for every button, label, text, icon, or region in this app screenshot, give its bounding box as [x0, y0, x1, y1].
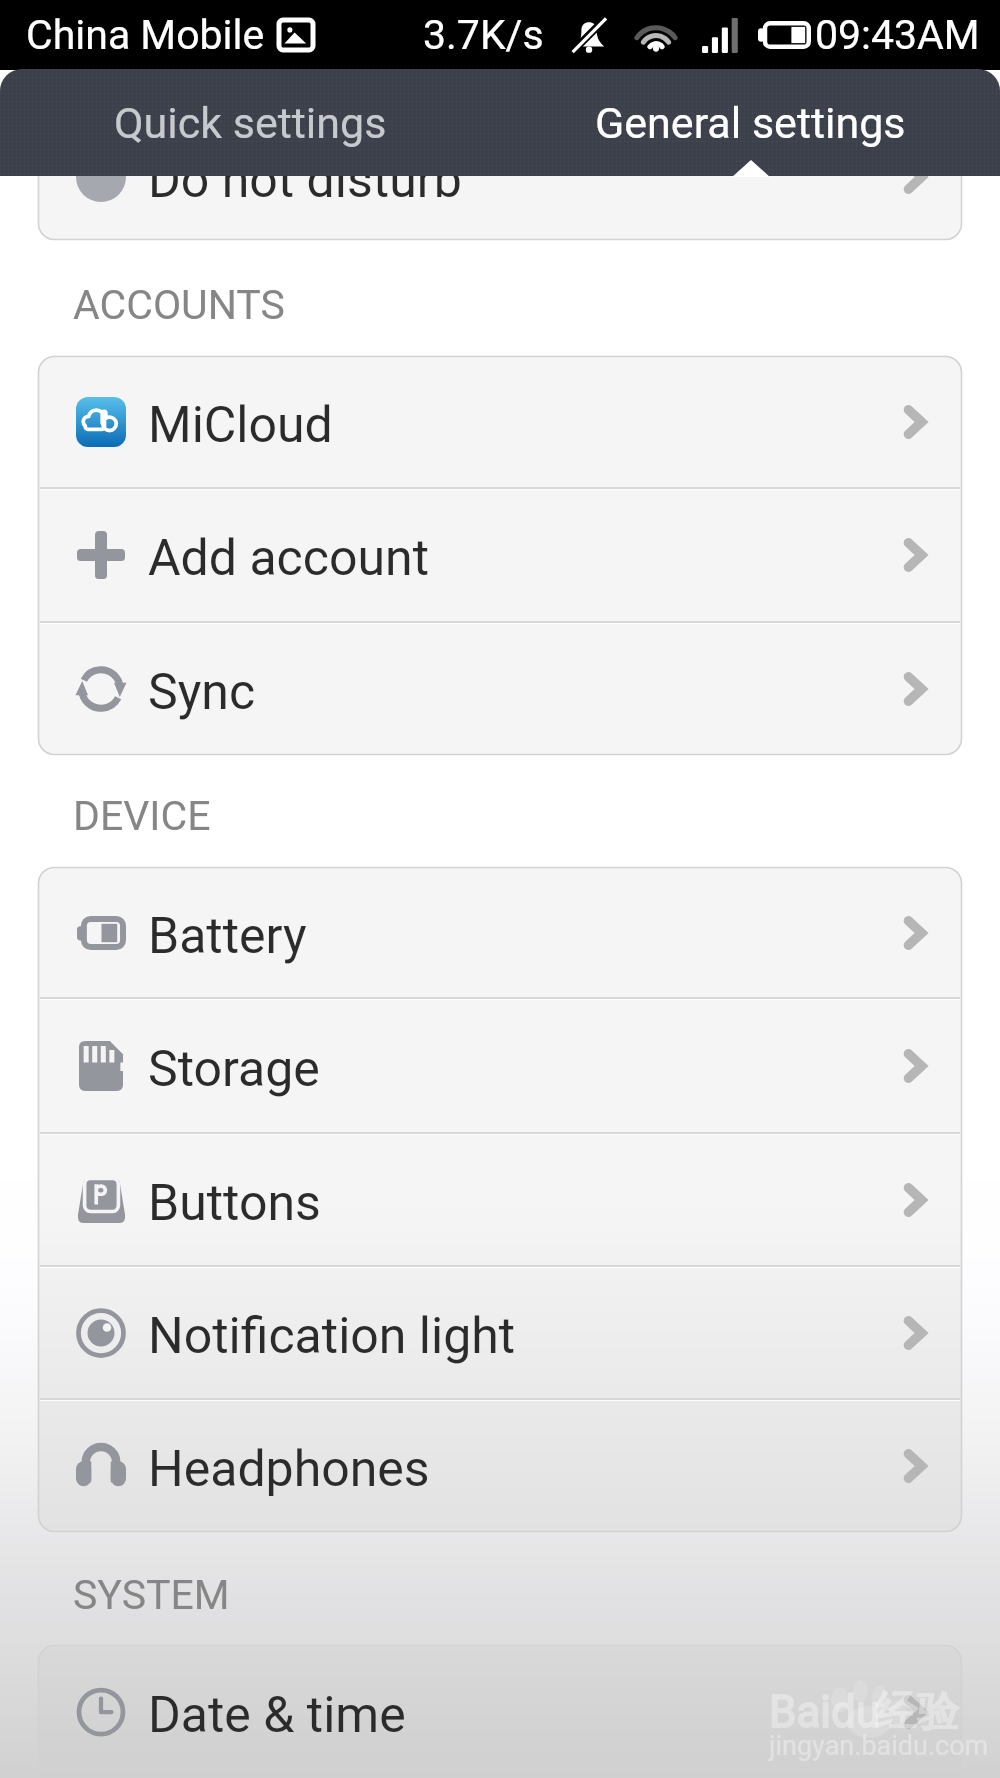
other: Screenshot: [279, 20, 313, 50]
other: Battery: [758, 21, 811, 49]
other: Signal: [702, 18, 738, 53]
staticText: Storage: [148, 1040, 320, 1099]
other: Wi-Fi: [632, 18, 680, 52]
staticText: General settings: [595, 98, 906, 148]
staticText: MiCloud: [148, 396, 333, 455]
other: Silent mode: [570, 16, 608, 54]
staticText: 09:43AM: [815, 11, 980, 59]
button[interactable]: Quick settings: [0, 69, 500, 176]
staticText: Headphones: [148, 1440, 430, 1499]
staticText: jingyan.baidu.com: [769, 1730, 989, 1762]
other: Add account: [77, 531, 125, 579]
button[interactable]: Battery: [38, 867, 962, 999]
other: Sync: [76, 664, 126, 714]
staticText: Quick settings: [114, 98, 387, 148]
staticText: Buttons: [148, 1174, 321, 1233]
button[interactable]: Buttons: [38, 1134, 962, 1266]
button[interactable]: Do not disturb: [38, 111, 962, 243]
staticText: Battery: [148, 907, 307, 966]
other: Headphones: [76, 1445, 126, 1487]
button[interactable]: Notification light: [38, 1267, 962, 1399]
other: Storage: [79, 1041, 123, 1091]
button[interactable]: Headphones: [38, 1400, 962, 1532]
staticText: 经验: [875, 1686, 959, 1739]
other: Battery: [77, 916, 126, 950]
button[interactable]: General settings: [500, 69, 1000, 176]
button[interactable]: Date & time: [38, 1646, 962, 1778]
button[interactable]: Storage: [38, 1000, 962, 1132]
staticText: 3.7K/s: [423, 11, 544, 59]
staticText: SYSTEM: [73, 1571, 230, 1619]
other: Buttons: [77, 1177, 126, 1223]
other: MiCloud: [76, 397, 126, 447]
staticText: Add account: [148, 529, 430, 588]
staticText: Do not disturb: [148, 151, 462, 210]
staticText: China Mobile: [26, 11, 265, 59]
staticText: Baidu: [769, 1686, 881, 1738]
button[interactable]: Add account: [38, 489, 962, 621]
button[interactable]: MiCloud: [38, 356, 962, 488]
button[interactable]: Sync: [38, 623, 962, 755]
staticText: Notification light: [148, 1307, 516, 1366]
staticText: ACCOUNTS: [73, 281, 285, 329]
staticText: Sync: [148, 663, 256, 722]
staticText: DEVICE: [73, 792, 211, 840]
staticText: Date & time: [148, 1686, 406, 1745]
